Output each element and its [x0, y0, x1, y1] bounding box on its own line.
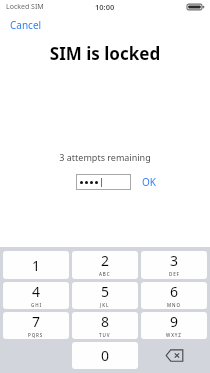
staticText: 5 — [101, 282, 110, 301]
staticText: 8 — [101, 312, 110, 331]
staticText: DEF — [169, 271, 180, 277]
button[interactable] — [76, 174, 131, 190]
button[interactable]: 7 — [3, 312, 69, 339]
button[interactable]: OK — [140, 173, 158, 191]
staticText: 3 — [170, 251, 179, 270]
button[interactable]: 2 — [72, 251, 138, 279]
button[interactable]: 9 — [141, 312, 207, 339]
staticText: ABC — [99, 271, 111, 277]
staticText: WXYZ — [166, 332, 182, 338]
staticText: GHI — [31, 302, 42, 308]
staticText: Cancel — [10, 18, 42, 32]
staticText: 3 attempts remaining — [0, 151, 210, 163]
staticText: 0 — [101, 346, 110, 365]
staticText: MNO — [167, 302, 181, 308]
staticText: SIM is locked — [0, 42, 210, 65]
button[interactable]: 3 — [141, 251, 207, 279]
staticText: PQRS — [28, 332, 44, 338]
button[interactable]: 8 — [72, 312, 138, 339]
staticText: JKL — [100, 302, 110, 308]
staticText: 1 — [32, 256, 41, 275]
staticText: 10:00 — [95, 2, 115, 12]
button[interactable]: 4 — [3, 282, 69, 309]
staticText: 7 — [32, 312, 41, 331]
button[interactable]: Delete — [141, 342, 207, 369]
staticText: 2 — [101, 251, 110, 270]
button[interactable]: 0 — [72, 342, 138, 369]
staticText: Locked SIM — [6, 2, 44, 12]
button[interactable]: 5 — [72, 282, 138, 309]
staticText: TUV — [99, 332, 111, 338]
button[interactable]: 6 — [141, 282, 207, 309]
button[interactable]: Cancel — [8, 16, 44, 34]
staticText: OK — [142, 175, 156, 189]
button[interactable]: 1 — [3, 251, 69, 279]
staticText: 9 — [170, 312, 179, 331]
staticText: 6 — [170, 282, 179, 301]
staticText: 4 — [32, 282, 41, 301]
